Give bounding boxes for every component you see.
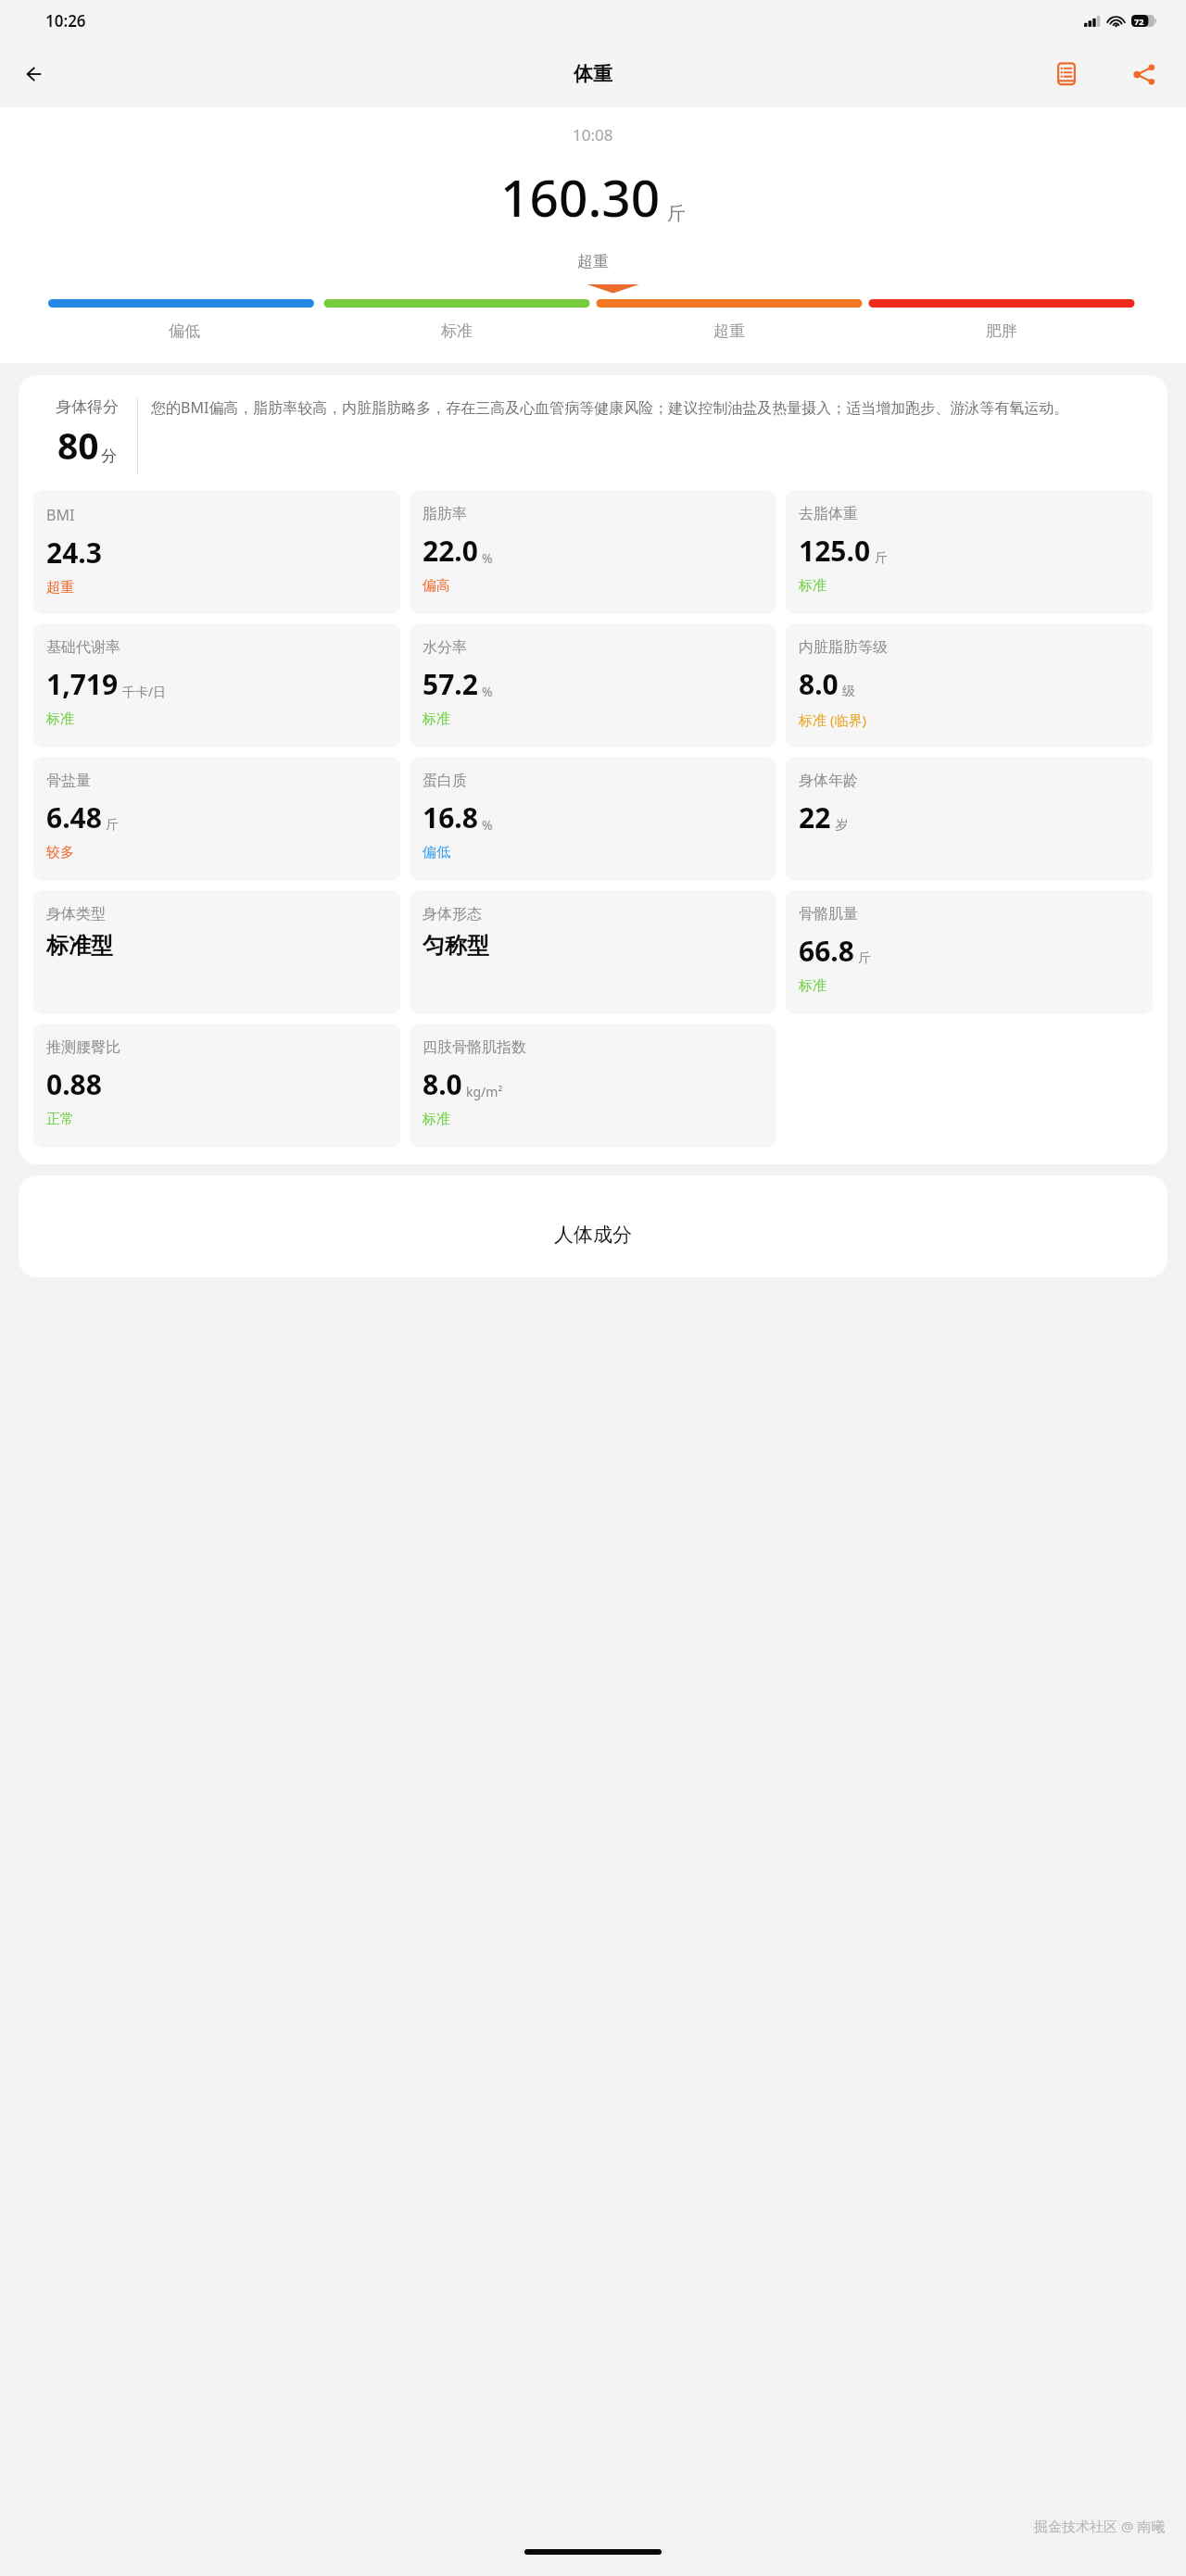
staticText: 72 xyxy=(1134,16,1144,27)
staticText: 斤 xyxy=(667,202,686,225)
staticText: 匀称型 xyxy=(423,932,489,960)
staticText: 偏高 xyxy=(423,577,450,595)
button[interactable]: 骨骼肌量 xyxy=(786,890,1153,1014)
button[interactable]: Report xyxy=(1041,49,1091,99)
staticText: 1,719 xyxy=(46,665,119,703)
staticText: 24.3 xyxy=(46,534,102,572)
button[interactable]: 水分率 xyxy=(410,623,776,748)
staticText: 身体得分 xyxy=(56,397,119,417)
button[interactable]: 四肢骨骼肌指数 xyxy=(410,1024,776,1148)
button[interactable]: 身体类型 xyxy=(33,890,400,1014)
staticText: 160.30 xyxy=(500,162,661,232)
button[interactable]: 身体年龄 xyxy=(786,757,1153,881)
staticText: 斤 xyxy=(875,550,888,567)
staticText: 标准 xyxy=(423,1111,450,1128)
staticText: 身体年龄 xyxy=(799,772,858,790)
staticText: 8.0 xyxy=(423,1065,462,1103)
button[interactable]: 身体形态 xyxy=(410,890,776,1014)
staticText: 千卡/日 xyxy=(122,683,167,700)
button[interactable]: 骨盐量 xyxy=(33,757,400,881)
staticText: 偏低 xyxy=(169,321,200,341)
staticText: 较多 xyxy=(46,844,74,861)
staticText: 6.48 xyxy=(46,798,102,836)
staticText: 超重 xyxy=(46,579,74,597)
staticText: 斤 xyxy=(858,950,871,967)
button[interactable]: 基础代谢率 xyxy=(33,623,400,748)
staticText: 骨盐量 xyxy=(46,772,91,790)
staticText: 基础代谢率 xyxy=(46,638,120,657)
staticText: 10:26 xyxy=(45,10,86,31)
button[interactable]: 脂肪率 xyxy=(410,490,776,614)
button[interactable]: 蛋白质 xyxy=(410,757,776,881)
staticText: 身体形态 xyxy=(423,905,482,924)
staticText: 超重 xyxy=(577,252,609,271)
staticText: 蛋白质 xyxy=(423,772,467,790)
staticText: 脂肪率 xyxy=(423,505,467,523)
button[interactable]: BMI xyxy=(33,490,400,614)
button[interactable]: Share xyxy=(1121,51,1167,97)
staticText: 125.0 xyxy=(799,532,871,570)
staticText: 岁 xyxy=(835,817,848,834)
staticText: % xyxy=(482,683,493,700)
staticText: BMI xyxy=(46,505,75,525)
button[interactable]: Back xyxy=(13,51,59,97)
staticText: 斤 xyxy=(106,817,119,834)
staticText: 标准型 xyxy=(46,932,113,960)
staticText: 80 xyxy=(57,421,99,470)
staticText: % xyxy=(482,816,493,834)
staticText: % xyxy=(482,549,493,567)
staticText: 标准 xyxy=(441,321,473,341)
staticText: 体重 xyxy=(574,62,612,86)
staticText: 偏低 xyxy=(423,844,450,861)
staticText: 人体成分 xyxy=(554,1223,632,1247)
staticText: 标准 xyxy=(46,710,74,728)
staticText: 分 xyxy=(101,446,117,466)
staticText: 去脂体重 xyxy=(799,505,858,523)
staticText: 66.8 xyxy=(799,932,854,970)
staticText: 57.2 xyxy=(423,665,478,703)
staticText: 16.8 xyxy=(423,798,478,836)
staticText: 标准 xyxy=(799,577,826,595)
staticText: 22 xyxy=(799,798,831,836)
staticText: 四肢骨骼肌指数 xyxy=(423,1038,526,1057)
staticText: 肥胖 xyxy=(986,321,1017,341)
staticText: 推测腰臀比 xyxy=(46,1038,120,1057)
staticText: 8.0 xyxy=(799,665,839,703)
staticText: 骨骼肌量 xyxy=(799,905,858,924)
staticText: 身体类型 xyxy=(46,905,106,924)
staticText: 级 xyxy=(842,684,855,700)
staticText: 10:08 xyxy=(573,124,613,145)
staticText: 标准 xyxy=(799,977,826,995)
staticText: 内脏脂肪等级 xyxy=(799,638,888,657)
staticText: 水分率 xyxy=(423,638,467,657)
staticText: 掘金技术社区 @ 南曦 xyxy=(1034,2517,1166,2535)
staticText: 正常 xyxy=(46,1111,74,1128)
staticText: 标准 xyxy=(423,710,450,728)
staticText: 22.0 xyxy=(423,532,478,570)
staticText: 0.88 xyxy=(46,1065,102,1103)
staticText: 标准 (临界) xyxy=(799,710,866,729)
button[interactable]: 推测腰臀比 xyxy=(33,1024,400,1148)
button[interactable]: 去脂体重 xyxy=(786,490,1153,614)
staticText: kg/m² xyxy=(466,1083,503,1100)
staticText: 您的BMI偏高，脂肪率较高，内脏脂肪略多，存在三高及心血管病等健康风险；建议控制… xyxy=(151,397,1069,418)
button[interactable]: 内脏脂肪等级 xyxy=(786,623,1153,748)
staticText: 超重 xyxy=(713,321,745,341)
